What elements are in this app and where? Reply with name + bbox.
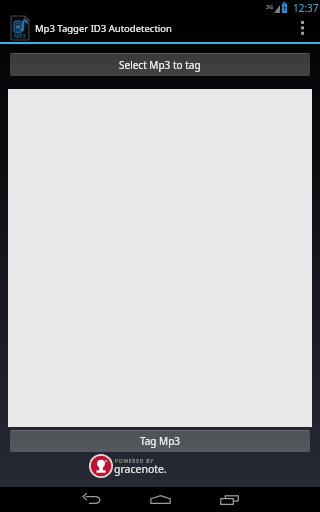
button[interactable]: Tag Mp3 [10, 430, 310, 452]
button[interactable]: Recents [205, 487, 253, 512]
staticText: Mp3 Tagger ID3 Autodetection [35, 22, 172, 35]
staticText: MP3 [14, 32, 26, 39]
staticText: 3G [266, 3, 274, 10]
button[interactable]: Select Mp3 to tag [10, 53, 310, 76]
staticText: Select Mp3 to tag [119, 58, 201, 72]
staticText: 12:37 [293, 1, 319, 15]
staticText: gracenote. [114, 462, 167, 476]
button[interactable]: More options [291, 14, 313, 42]
staticText: Tag Mp3 [140, 434, 181, 448]
button[interactable]: Home [136, 487, 184, 512]
staticText: POWERED BY [115, 458, 154, 465]
button[interactable]: Back [68, 487, 116, 512]
